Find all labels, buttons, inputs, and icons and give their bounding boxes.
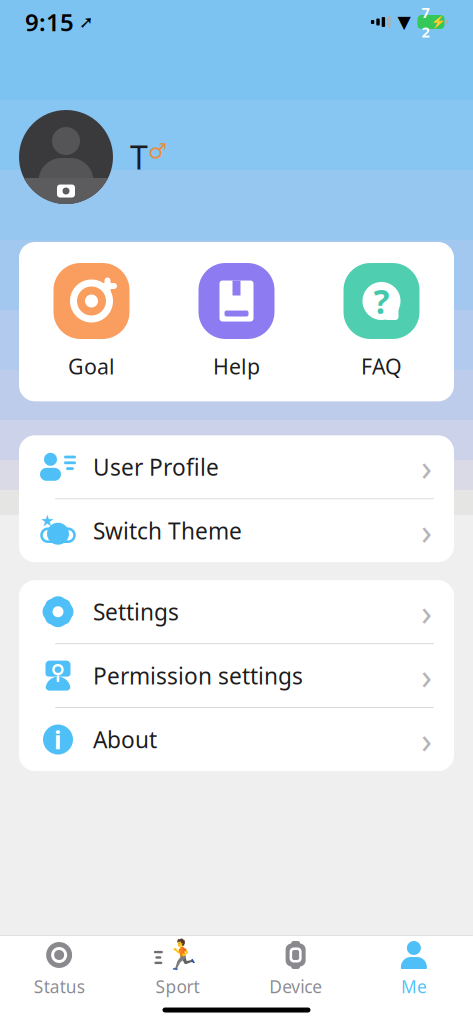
staticText: User Profile — [93, 452, 219, 482]
button[interactable]: 🏃 — [118, 934, 236, 998]
staticText: Sport — [155, 975, 199, 998]
staticText: › — [421, 716, 432, 763]
staticText: FAQ — [361, 352, 402, 380]
button[interactable]: Goal — [19, 263, 164, 380]
staticText: ⚡ — [430, 15, 445, 29]
staticText: › — [421, 507, 432, 555]
staticText: Settings — [93, 597, 179, 627]
staticText: › — [421, 588, 432, 636]
staticText: Help — [213, 352, 260, 380]
staticText: 9:15 — [25, 6, 74, 38]
staticText: Me — [401, 975, 427, 998]
staticText: Goal — [68, 352, 115, 380]
staticText: T — [130, 136, 148, 178]
staticText: Status — [34, 975, 85, 998]
staticText: ♂ — [148, 139, 167, 163]
staticText: › — [421, 652, 432, 699]
button[interactable]: Permission settings — [19, 644, 454, 707]
staticText: ★ — [40, 512, 54, 530]
staticText: 72 — [421, 2, 429, 41]
staticText: Device — [269, 975, 322, 998]
staticText: ? — [373, 279, 389, 323]
button[interactable]: Me — [355, 934, 473, 998]
button[interactable]: ? — [309, 263, 454, 380]
button[interactable]: Settings — [19, 580, 454, 643]
button[interactable]: Change profile photo — [19, 110, 113, 204]
staticText: Permission settings — [93, 661, 303, 691]
button[interactable]: ★ — [19, 499, 454, 562]
button[interactable]: Help — [164, 263, 309, 380]
button[interactable]: i — [19, 708, 454, 771]
button[interactable]: Device — [236, 934, 355, 998]
staticText: i — [54, 723, 62, 756]
staticText: › — [421, 443, 432, 491]
staticText: ▼ — [397, 12, 410, 32]
staticText: 🏃 — [164, 938, 201, 972]
staticText: Switch Theme — [93, 516, 242, 546]
staticText: About — [93, 724, 157, 755]
button[interactable]: Status — [0, 934, 118, 998]
staticText: ➚ — [79, 12, 94, 32]
button[interactable]: User Profile — [19, 435, 454, 498]
